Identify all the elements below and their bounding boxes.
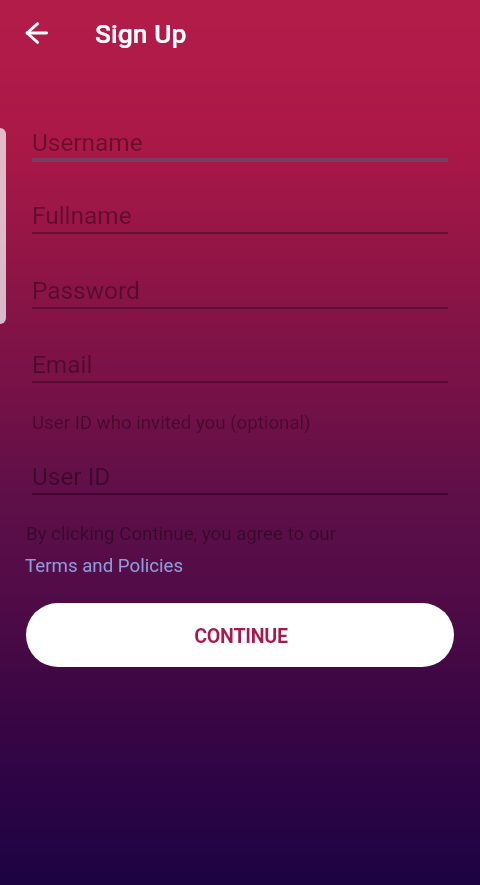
staticText: User ID who invited you (optional): [32, 412, 311, 434]
button[interactable]: Terms and Policies: [25, 552, 187, 578]
button[interactable]: Navigate back: [14, 11, 59, 56]
button[interactable]: Fullname: [32, 194, 448, 238]
button[interactable]: User ID: [32, 455, 448, 499]
button[interactable]: Open navigation drawer: [0, 128, 6, 324]
staticText: CONTINUE: [194, 625, 288, 648]
staticText: By clicking Continue, you agree to our: [26, 523, 336, 545]
button[interactable]: CONTINUE: [26, 603, 454, 667]
button[interactable]: Email: [32, 343, 448, 387]
button[interactable]: Password: [32, 269, 448, 313]
staticText: Fullname: [32, 201, 132, 230]
staticText: Terms and Policies: [25, 555, 184, 577]
staticText: Email: [32, 350, 93, 379]
staticText: Sign Up: [95, 18, 187, 49]
staticText: User ID: [32, 462, 111, 491]
staticText: Password: [32, 276, 140, 305]
staticText: Username: [32, 128, 143, 157]
button[interactable]: Username: [32, 121, 448, 165]
